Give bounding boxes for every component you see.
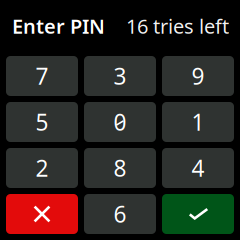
staticText: 16 tries left (126, 13, 229, 39)
button[interactable]: 7 (6, 56, 78, 96)
staticText: 4 (191, 153, 204, 183)
button[interactable]: 8 (84, 148, 156, 188)
button[interactable]: Cancel (6, 194, 78, 234)
button[interactable]: 5 (6, 102, 78, 142)
button[interactable]: 1 (162, 102, 234, 142)
button[interactable]: 6 (84, 194, 156, 234)
staticText: Enter PIN (12, 13, 105, 39)
button[interactable]: Confirm (162, 194, 234, 234)
staticText: 7 (35, 61, 48, 91)
staticText: 5 (35, 107, 48, 137)
staticText: 9 (191, 61, 204, 91)
button[interactable]: 9 (162, 56, 234, 96)
staticText: 1 (191, 107, 204, 137)
button[interactable]: 2 (6, 148, 78, 188)
staticText: 0 (113, 107, 126, 137)
button[interactable]: 0 (84, 102, 156, 142)
staticText: 6 (113, 199, 126, 229)
button[interactable]: 3 (84, 56, 156, 96)
button[interactable]: 4 (162, 148, 234, 188)
staticText: 3 (113, 61, 126, 91)
staticText: 8 (113, 153, 126, 183)
staticText: 2 (35, 153, 48, 183)
